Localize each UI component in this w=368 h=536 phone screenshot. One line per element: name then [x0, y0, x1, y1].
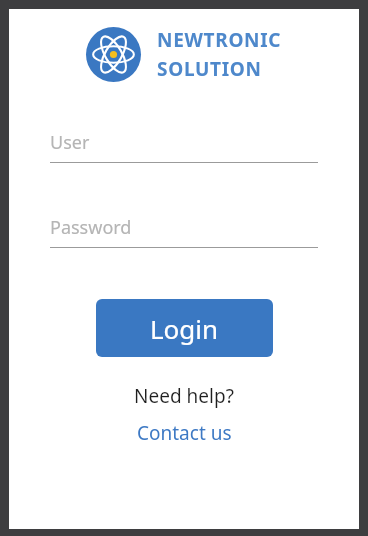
other: Newtronic Solution logo	[86, 27, 141, 82]
staticText: Login	[150, 311, 219, 346]
staticText: NEWTRONIC	[157, 27, 282, 53]
staticText: User	[50, 130, 90, 155]
button[interactable]: Password	[50, 215, 318, 248]
staticText: Contact us	[137, 420, 232, 446]
button[interactable]: Contact us	[129, 418, 240, 448]
staticText: Password	[50, 215, 132, 240]
button[interactable]: Login	[96, 299, 273, 357]
button[interactable]: User	[50, 130, 318, 163]
staticText: Need help?	[9, 383, 359, 409]
staticText: SOLUTION	[157, 56, 262, 82]
